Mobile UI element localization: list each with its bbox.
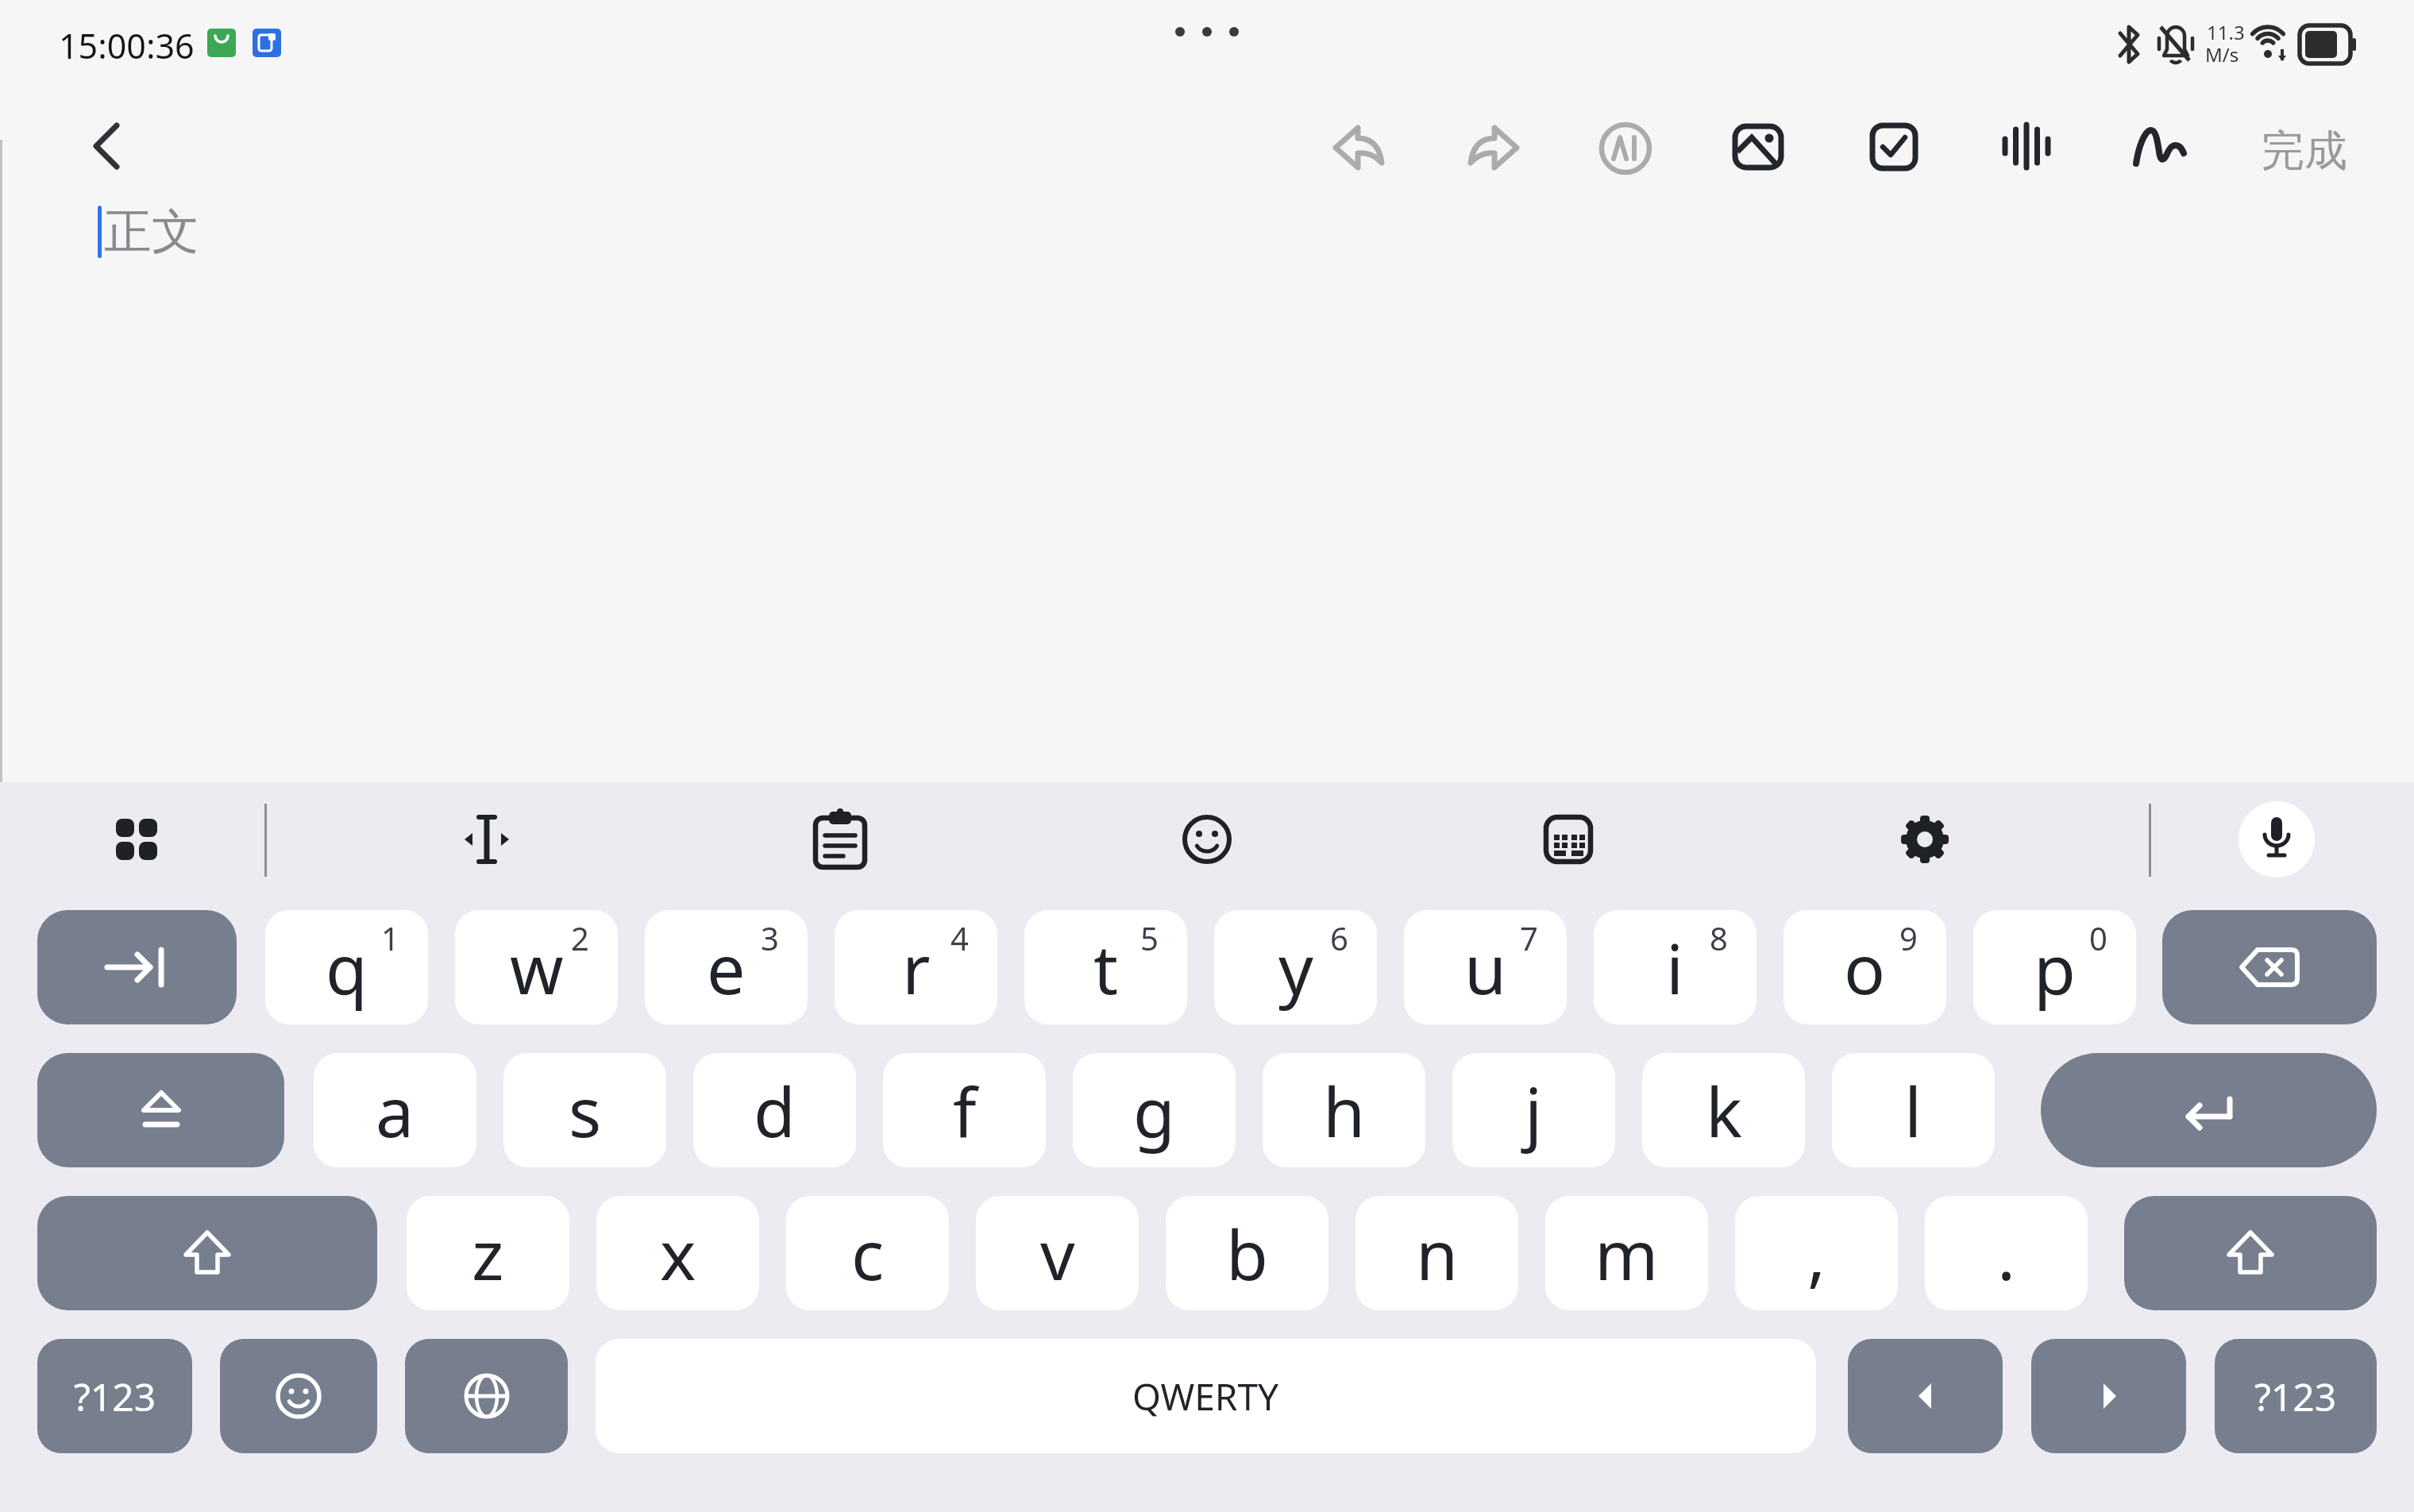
button[interactable] [1899,814,1950,865]
staticText: w [510,921,564,1014]
button[interactable]: u [1404,910,1567,1024]
staticText: z [472,1207,504,1300]
staticText: q [326,921,368,1014]
button[interactable]: i [1594,910,1757,1024]
staticText: , [1807,1207,1826,1300]
staticText: x [660,1207,696,1300]
button[interactable]: t [1024,910,1187,1024]
button[interactable] [37,1053,284,1167]
button[interactable] [405,1339,568,1453]
button[interactable]: e [645,910,808,1024]
button[interactable]: . [1925,1196,2088,1310]
button[interactable]: h [1263,1053,1425,1167]
staticText: 9 [1899,916,1918,959]
button[interactable] [2002,121,2051,172]
staticText: 0 [2089,916,2107,959]
staticText: e [707,921,746,1014]
button[interactable] [1182,815,1232,864]
button[interactable]: y [1214,910,1377,1024]
button[interactable]: r [835,910,997,1024]
staticText: j [1525,1064,1543,1157]
button[interactable]: w [455,910,618,1024]
staticText: d [754,1064,796,1157]
staticText: k [1706,1064,1742,1157]
button[interactable] [220,1339,377,1453]
button[interactable]: x [596,1196,759,1310]
button[interactable] [2041,1053,2377,1167]
button[interactable] [813,808,867,870]
staticText: 6 [1330,916,1348,959]
staticText: 4 [951,916,969,959]
button[interactable]: p [1973,910,2136,1024]
button[interactable] [1598,121,1653,176]
button[interactable] [1870,123,1918,171]
staticText: v [1040,1207,1075,1300]
staticText: ?123 [74,1371,156,1422]
button[interactable] [37,910,237,1024]
staticText: 8 [1710,916,1728,959]
button[interactable] [1544,815,1593,864]
staticText: . [1997,1207,2016,1300]
staticText: u [1464,921,1507,1014]
button[interactable] [1733,124,1784,170]
staticText: 1 [381,916,399,959]
staticText: 3 [761,916,779,959]
button[interactable] [37,1196,377,1310]
button[interactable]: d [693,1053,856,1167]
button[interactable]: j [1452,1053,1615,1167]
button[interactable]: v [976,1196,1139,1310]
staticText: b [1226,1207,1268,1300]
staticText: h [1323,1064,1366,1157]
staticText: g [1133,1064,1175,1157]
staticText: i [1666,921,1684,1014]
staticText: o [1844,921,1886,1014]
staticText: 15:00:36 [59,22,195,69]
button[interactable]: g [1073,1053,1236,1167]
button[interactable] [461,814,512,865]
button[interactable]: ?123 [2215,1339,2377,1453]
button[interactable]: l [1832,1053,1995,1167]
button[interactable] [1467,123,1520,171]
button[interactable]: s [503,1053,666,1167]
staticText: 7 [1520,916,1538,959]
button[interactable]: q [265,910,428,1024]
button[interactable]: o [1784,910,1946,1024]
staticText: l [1904,1064,1922,1157]
button[interactable] [2132,119,2189,168]
staticText: 5 [1140,916,1159,959]
staticText: r [902,921,931,1014]
staticText: QWERTY [1132,1371,1279,1421]
staticText: ?123 [2254,1371,2337,1422]
button[interactable] [2162,910,2377,1024]
button[interactable]: 完成 [2262,124,2347,178]
button[interactable]: QWERTY [596,1339,1816,1453]
button[interactable]: ?123 [37,1339,192,1453]
staticText: m [1595,1207,1659,1300]
staticText: f [953,1064,977,1157]
button[interactable] [2124,1196,2377,1310]
button[interactable]: b [1166,1196,1328,1310]
staticText: 11.3 [2207,19,2245,45]
button[interactable]: k [1642,1053,1805,1167]
button[interactable] [1332,123,1385,171]
button[interactable]: n [1355,1196,1518,1310]
button[interactable] [1848,1339,2003,1453]
staticText: a [376,1064,415,1157]
button[interactable] [2239,801,2315,877]
button[interactable] [2031,1339,2186,1453]
button[interactable] [83,121,134,172]
staticText: M/s [2205,41,2239,67]
button[interactable]: m [1545,1196,1708,1310]
button[interactable]: c [786,1196,949,1310]
staticText: c [851,1207,885,1300]
staticText: p [2034,921,2076,1014]
staticText: s [569,1064,602,1157]
staticText: 正文 [104,202,199,262]
button[interactable]: , [1735,1196,1898,1310]
button[interactable]: z [407,1196,569,1310]
button[interactable]: a [314,1053,476,1167]
staticText: y [1278,921,1313,1014]
button[interactable] [114,817,159,862]
button[interactable]: f [883,1053,1046,1167]
staticText: n [1416,1207,1459,1300]
